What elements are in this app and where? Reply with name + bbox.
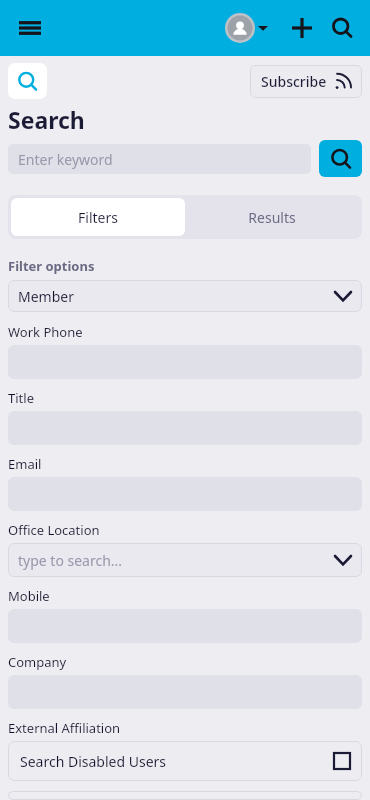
button[interactable]: Enter keyword <box>8 144 311 174</box>
staticText: Email <box>8 455 42 473</box>
staticText: Filters <box>78 208 118 227</box>
staticText: Mobile <box>8 587 50 605</box>
button[interactable]: Member <box>8 280 362 312</box>
staticText: Results <box>248 208 296 227</box>
staticText: Work Phone <box>8 323 83 341</box>
button[interactable]: Results <box>185 198 359 236</box>
staticText: Search Disabled Users <box>20 752 334 771</box>
staticText: Search <box>8 104 85 135</box>
staticText: type to search... <box>18 551 334 570</box>
button[interactable]: Subscribe <box>250 65 362 98</box>
staticText: Subscribe <box>261 72 327 91</box>
staticText: Company <box>8 653 67 671</box>
button[interactable]: Account <box>221 13 272 43</box>
button[interactable]: Add <box>282 8 322 48</box>
button[interactable]: Search <box>322 8 362 48</box>
button[interactable]: Filters <box>11 198 185 236</box>
button[interactable]: Run search <box>319 140 362 177</box>
staticText: Title <box>8 389 34 407</box>
button[interactable]: Menu <box>10 8 50 48</box>
staticText: Enter keyword <box>18 150 113 169</box>
button[interactable]: Search page <box>8 63 47 99</box>
staticText: Filter options <box>8 257 95 275</box>
staticText: Office Location <box>8 521 100 539</box>
staticText: External Affiliation <box>8 719 121 737</box>
button[interactable]: Search Disabled Users <box>8 741 362 781</box>
button[interactable] <box>8 791 362 800</box>
button[interactable]: type to search... <box>8 543 362 577</box>
staticText: Member <box>18 287 334 306</box>
